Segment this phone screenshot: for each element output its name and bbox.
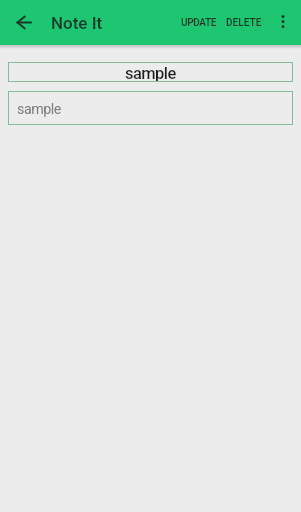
button[interactable]: More options	[264, 0, 301, 45]
button[interactable]: DELETE	[220, 0, 264, 45]
staticText: UPDATE	[181, 17, 217, 29]
staticText: Note It	[51, 13, 103, 33]
button[interactable]: Navigate up	[0, 0, 47, 45]
staticText: DELETE	[226, 17, 262, 29]
staticText: sample	[125, 64, 176, 83]
button[interactable]: sample	[8, 62, 293, 82]
button[interactable]: UPDATE	[175, 0, 220, 45]
button[interactable]: sample	[8, 91, 293, 125]
staticText: sample	[17, 101, 61, 118]
